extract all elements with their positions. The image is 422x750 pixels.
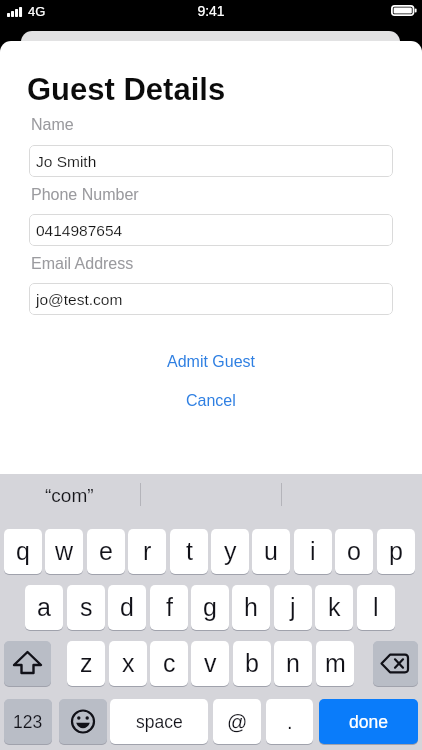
staticText: 0414987654 [36, 222, 123, 239]
button[interactable]: Cancel [0, 388, 422, 414]
staticText: Admit Guest [167, 353, 256, 371]
button[interactable]: a [25, 585, 63, 630]
button[interactable]: k [315, 585, 353, 630]
staticText: q [16, 537, 30, 565]
button[interactable]: jo@test.com [29, 283, 393, 315]
button[interactable]: done [319, 699, 418, 744]
button[interactable]: f [150, 585, 188, 630]
button[interactable]: m [316, 641, 354, 686]
button[interactable]: Emoji [59, 699, 107, 744]
button[interactable]: t [170, 529, 208, 574]
button[interactable]: “com” [45, 485, 94, 506]
staticText: g [203, 593, 217, 621]
button[interactable]: y [211, 529, 249, 574]
button[interactable]: p [377, 529, 415, 574]
button[interactable]: z [67, 641, 105, 686]
staticText: h [244, 593, 258, 621]
staticText: m [325, 649, 346, 677]
button[interactable]: . [266, 699, 313, 744]
button[interactable]: v [191, 641, 229, 686]
button[interactable]: r [128, 529, 166, 574]
staticText: c [163, 649, 176, 677]
staticText: p [389, 537, 403, 565]
staticText: jo@test.com [36, 291, 123, 308]
staticText: l [373, 593, 379, 621]
button[interactable]: u [252, 529, 290, 574]
button[interactable]: n [274, 641, 312, 686]
button[interactable]: Shift [4, 641, 51, 686]
button[interactable]: d [108, 585, 146, 630]
staticText: x [122, 649, 135, 677]
staticText: Jo Smith [36, 153, 97, 170]
staticText: f [166, 593, 173, 621]
button[interactable]: 123 [4, 699, 52, 744]
button[interactable]: Jo Smith [29, 145, 393, 177]
button[interactable]: q [4, 529, 42, 574]
staticText: Email Address [31, 255, 134, 273]
button[interactable]: Admit Guest [0, 349, 422, 375]
staticText: done [349, 712, 388, 732]
staticText: n [286, 649, 300, 677]
button[interactable]: s [67, 585, 105, 630]
button[interactable]: l [357, 585, 395, 630]
button[interactable]: e [87, 529, 125, 574]
staticText: r [143, 537, 152, 565]
staticText: t [186, 537, 193, 565]
button[interactable]: x [109, 641, 147, 686]
button[interactable]: b [233, 641, 271, 686]
button[interactable]: g [191, 585, 229, 630]
button[interactable]: space [110, 699, 208, 744]
staticText: Cancel [186, 392, 236, 410]
button[interactable]: j [274, 585, 312, 630]
staticText: 4G [28, 4, 46, 19]
staticText: i [310, 537, 316, 565]
staticText: o [347, 537, 361, 565]
staticText: space [136, 712, 183, 732]
staticText: b [245, 649, 259, 677]
button[interactable]: w [45, 529, 83, 574]
staticText: y [224, 537, 237, 565]
staticText: 123 [13, 712, 43, 732]
staticText: v [204, 649, 217, 677]
staticText: Name [31, 116, 74, 134]
staticText: j [290, 593, 296, 621]
staticText: u [264, 537, 278, 565]
button[interactable]: i [294, 529, 332, 574]
staticText: z [80, 649, 93, 677]
staticText: w [55, 537, 74, 565]
staticText: Phone Number [31, 186, 139, 204]
button[interactable]: c [150, 641, 188, 686]
staticText: 9:41 [0, 3, 422, 19]
button[interactable]: @ [213, 699, 261, 744]
staticText: Guest Details [27, 72, 226, 107]
staticText: . [287, 711, 293, 733]
staticText: s [80, 593, 93, 621]
button[interactable]: 0414987654 [29, 214, 393, 246]
staticText: k [328, 593, 341, 621]
button[interactable]: Backspace [373, 641, 418, 686]
staticText: @ [227, 711, 248, 733]
button[interactable]: h [232, 585, 270, 630]
staticText: d [120, 593, 134, 621]
button[interactable]: o [335, 529, 373, 574]
staticText: a [37, 593, 51, 621]
staticText: e [99, 537, 113, 565]
